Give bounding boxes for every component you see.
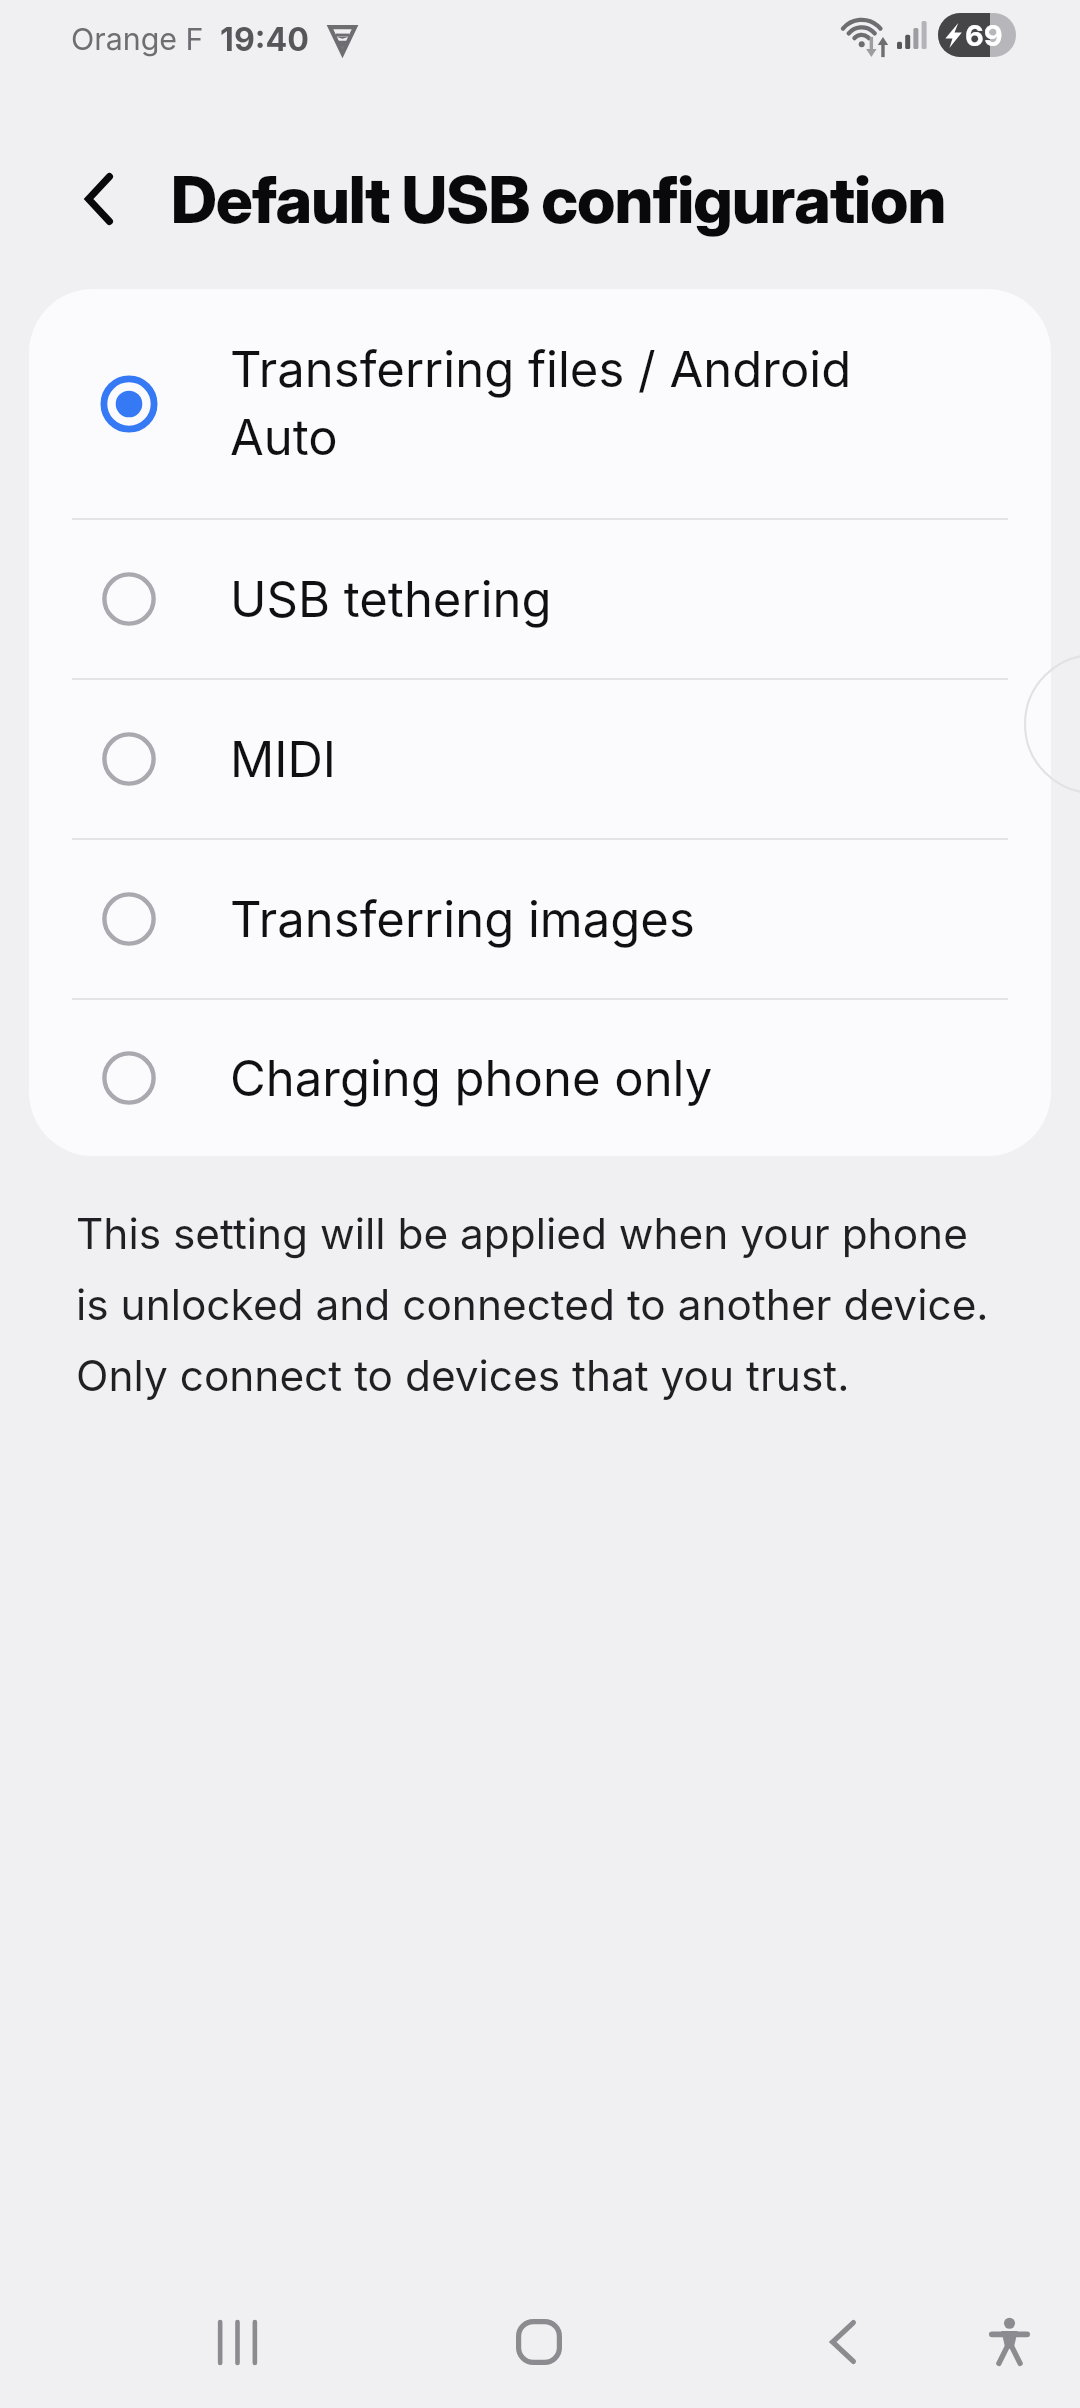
button[interactable]: USB tethering bbox=[29, 520, 1051, 678]
staticText: MIDI bbox=[230, 730, 950, 789]
button[interactable]: Navigate up bbox=[59, 160, 139, 238]
staticText: Orange F bbox=[71, 21, 204, 58]
button[interactable]: MIDI bbox=[29, 680, 1051, 838]
staticText: 19:40 bbox=[220, 20, 310, 59]
button[interactable]: Recent apps bbox=[177, 2282, 297, 2402]
staticText: 69 bbox=[965, 18, 1003, 53]
staticText: Charging phone only bbox=[230, 1049, 950, 1108]
staticText: Transferring files / Android Auto bbox=[230, 340, 950, 467]
button[interactable]: Accessibility bbox=[949, 2282, 1069, 2402]
staticText: Default USB configuration bbox=[171, 160, 946, 238]
staticText: Transferring images bbox=[230, 890, 950, 949]
button[interactable]: Charging phone only bbox=[29, 1000, 1051, 1156]
staticText: USB tethering bbox=[230, 570, 950, 629]
button[interactable]: Back bbox=[783, 2282, 903, 2402]
button[interactable]: Transferring files / Android Auto bbox=[29, 289, 1051, 518]
button[interactable]: Home bbox=[479, 2282, 599, 2402]
staticText: This setting will be applied when your p… bbox=[76, 1208, 1008, 1401]
button[interactable]: Transferring images bbox=[29, 840, 1051, 998]
